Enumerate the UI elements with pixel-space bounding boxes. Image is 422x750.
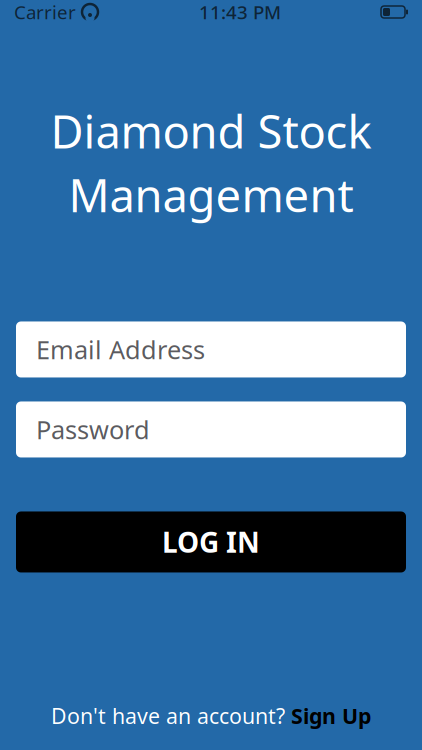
staticText <box>76 0 81 24</box>
staticText: Management <box>68 164 353 225</box>
staticText: Email Address <box>36 333 205 366</box>
staticText: Diamond Stock <box>50 100 371 162</box>
staticText: Sign Up <box>291 702 371 730</box>
button[interactable]: Password <box>16 401 406 457</box>
button[interactable]: LOG IN <box>16 511 406 572</box>
staticText: Don't have an account? <box>51 702 291 730</box>
button[interactable]: Email Address <box>16 321 406 377</box>
staticText: Carrier <box>14 0 76 24</box>
staticText: 11:43 PM <box>199 0 281 24</box>
staticText: Password <box>36 413 150 446</box>
staticText: LOG IN <box>162 523 260 561</box>
button[interactable]: Don't have an account? <box>39 696 383 736</box>
